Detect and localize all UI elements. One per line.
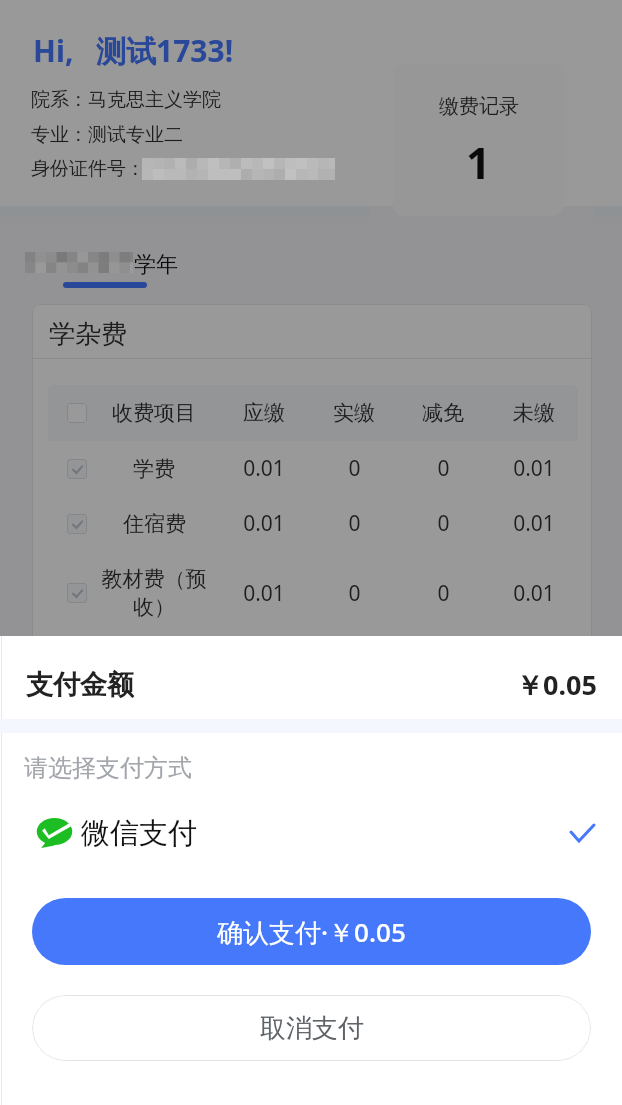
staticText: 学年 bbox=[134, 251, 178, 279]
staticText: 0.01 bbox=[243, 579, 285, 608]
button[interactable]: 确认支付·￥0.05 bbox=[32, 898, 591, 965]
staticText: 院系：马克思主义学院 bbox=[31, 88, 221, 112]
button[interactable]: 住宿费 bbox=[48, 496, 578, 551]
staticText: 微信支付 bbox=[81, 815, 197, 852]
button[interactable]: 教材费（预收） bbox=[48, 551, 578, 635]
staticText: 0 bbox=[348, 579, 361, 608]
staticText: 0.01 bbox=[243, 454, 285, 483]
staticText: 0.01 bbox=[513, 454, 555, 483]
staticText: Hi, bbox=[33, 30, 74, 71]
staticText: 实缴 bbox=[333, 400, 375, 426]
staticText: 0 bbox=[437, 454, 450, 483]
staticText: 0.01 bbox=[243, 509, 285, 538]
button[interactable]: 学费 bbox=[48, 441, 578, 496]
staticText: 取消支付 bbox=[260, 1012, 364, 1045]
staticText: 减免 bbox=[422, 400, 464, 426]
staticText: 学杂费 bbox=[49, 318, 127, 351]
staticText: 收费项目 bbox=[112, 400, 196, 426]
staticText: 0 bbox=[437, 509, 450, 538]
staticText: ￥0.05 bbox=[516, 666, 597, 703]
staticText: 0 bbox=[348, 454, 361, 483]
button[interactable]: 微信支付 bbox=[36, 805, 594, 861]
staticText: 测试1733! bbox=[96, 30, 234, 71]
staticText: 住宿费 bbox=[123, 511, 186, 537]
staticText: 0 bbox=[348, 509, 361, 538]
staticText: 教材费（预收） bbox=[98, 566, 210, 620]
staticText: 0.01 bbox=[513, 579, 555, 608]
staticText: 学费 bbox=[133, 456, 175, 482]
staticText: 0 bbox=[437, 579, 450, 608]
staticText: 支付金额 bbox=[26, 668, 134, 702]
staticText: 请选择支付方式 bbox=[24, 753, 192, 783]
staticText: 未缴 bbox=[513, 400, 555, 426]
staticText: 专业：测试专业二 bbox=[31, 123, 183, 147]
staticText: 缴费记录 bbox=[439, 94, 519, 119]
staticText: 0.01 bbox=[513, 509, 555, 538]
staticText: 身份证件号： bbox=[31, 157, 145, 181]
staticText: 确认支付·￥0.05 bbox=[217, 914, 406, 950]
button[interactable]: Select all rows bbox=[48, 385, 578, 441]
staticText: 应缴 bbox=[243, 400, 285, 426]
staticText: 1 bbox=[466, 133, 491, 192]
button[interactable]: 缴费记录 bbox=[393, 63, 564, 216]
button[interactable]: 取消支付 bbox=[32, 995, 591, 1061]
